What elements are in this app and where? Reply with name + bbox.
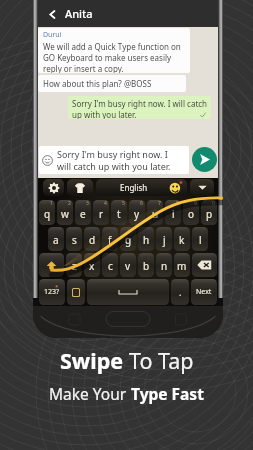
- staticText: 5: [122, 200, 125, 207]
- staticText: 8: [176, 200, 179, 207]
- button[interactable]: 123?: [39, 279, 65, 305]
- staticText: w: [61, 207, 69, 221]
- staticText: u: [152, 207, 159, 221]
- button[interactable]: z: [66, 253, 82, 277]
- button[interactable]: h: [138, 227, 154, 251]
- staticText: GO Keyboard to make users easily: [43, 52, 172, 63]
- staticText: Durui: [43, 30, 62, 40]
- button[interactable]: w: [57, 200, 73, 225]
- staticText: r: [99, 207, 104, 221]
- staticText: 7: [158, 200, 161, 207]
- staticText: To Tap: [129, 346, 194, 375]
- staticText: How about this plan? @BOSS: [43, 78, 152, 89]
- staticText: English: [120, 182, 148, 193]
- staticText: Type Fast: [131, 383, 204, 404]
- button[interactable]: Shift: [39, 253, 64, 277]
- staticText: y: [134, 207, 140, 221]
- staticText: h: [143, 233, 150, 247]
- staticText: x: [89, 259, 95, 273]
- staticText: f: [108, 233, 112, 247]
- button[interactable]: .: [171, 279, 189, 305]
- button[interactable]: u: [147, 200, 163, 225]
- button[interactable]: y: [129, 200, 145, 225]
- staticText: up with you later.: [72, 109, 137, 119]
- button[interactable]: o: [183, 200, 199, 225]
- button[interactable]: Emoji: [169, 181, 182, 194]
- button[interactable]: a: [48, 227, 64, 251]
- staticText: will catch up with you later.: [57, 160, 171, 172]
- staticText: o: [188, 207, 195, 221]
- button[interactable]: i: [165, 200, 181, 225]
- button[interactable]: Backspace: [192, 253, 217, 277]
- button[interactable]: s: [66, 227, 82, 251]
- staticText: s: [72, 233, 77, 247]
- button[interactable]: d: [84, 227, 100, 251]
- button[interactable]: k: [174, 227, 190, 251]
- button[interactable]: q: [39, 200, 55, 225]
- button[interactable]: p: [201, 200, 217, 225]
- button[interactable]: x: [84, 253, 100, 277]
- staticText: 4: [104, 200, 107, 207]
- button[interactable]: Back: [45, 7, 59, 21]
- staticText: 6: [140, 200, 143, 207]
- staticText: .: [179, 286, 182, 298]
- staticText: 123?: [44, 287, 60, 297]
- staticText: 0: [212, 200, 215, 207]
- staticText: Sorry I'm busy right now. I will catch: [72, 98, 208, 109]
- button[interactable]: j: [156, 227, 172, 251]
- staticText: Anita: [65, 6, 93, 21]
- button[interactable]: More: [190, 179, 214, 196]
- button[interactable]: b: [138, 253, 154, 277]
- staticText: n: [161, 259, 168, 273]
- staticText: d: [89, 233, 96, 247]
- button[interactable]: Space: [87, 279, 169, 305]
- button[interactable]: Language: [67, 279, 85, 305]
- button[interactable]: v: [120, 253, 136, 277]
- button[interactable]: r: [93, 200, 109, 225]
- button[interactable]: Settings: [43, 179, 64, 196]
- staticText: g: [125, 233, 132, 247]
- button[interactable]: e: [75, 200, 91, 225]
- staticText: p: [206, 207, 213, 221]
- staticText: 3: [86, 200, 89, 207]
- button[interactable]: Sorry I'm busy right now. I: [42, 146, 186, 174]
- button[interactable]: g: [120, 227, 136, 251]
- button[interactable]: Home: [102, 311, 154, 330]
- staticText: l: [199, 233, 202, 247]
- staticText: 1: [50, 200, 53, 207]
- staticText: t: [117, 207, 121, 221]
- staticText: a: [53, 233, 59, 247]
- staticText: 2: [68, 200, 71, 207]
- staticText: e: [80, 207, 86, 221]
- staticText: k: [179, 233, 185, 247]
- staticText: z: [72, 259, 77, 273]
- button[interactable]: t: [111, 200, 127, 225]
- staticText: b: [143, 259, 150, 273]
- staticText: i: [172, 207, 175, 221]
- staticText: reply or insert a copy.: [43, 63, 124, 73]
- staticText: m: [177, 259, 187, 273]
- staticText: v: [125, 259, 131, 273]
- staticText: Make Your: [49, 383, 131, 404]
- button[interactable]: Send: [192, 147, 217, 172]
- button[interactable]: Next: [191, 279, 217, 305]
- staticText: Sorry I'm busy right now. I: [57, 148, 168, 160]
- button[interactable]: Theme: [67, 179, 93, 196]
- staticText: Next: [196, 287, 212, 297]
- button[interactable]: l: [192, 227, 208, 251]
- button[interactable]: f: [102, 227, 118, 251]
- button[interactable]: English: [96, 179, 187, 196]
- button[interactable]: m: [174, 253, 190, 277]
- staticText: c: [108, 259, 113, 273]
- staticText: j: [163, 233, 166, 247]
- staticText: q: [44, 207, 51, 221]
- staticText: We will add a Quick Type function on: [43, 41, 181, 52]
- button[interactable]: c: [102, 253, 118, 277]
- button[interactable]: n: [156, 253, 172, 277]
- staticText: Swipe: [60, 346, 129, 375]
- staticText: *: [55, 283, 59, 291]
- staticText: 9: [194, 200, 197, 207]
